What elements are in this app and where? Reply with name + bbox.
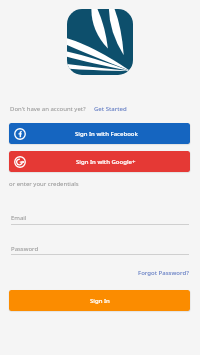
button[interactable]: Facebook xyxy=(9,123,190,144)
staticText: Don't have an account yet? xyxy=(10,105,86,113)
staticText: Email xyxy=(11,214,27,222)
staticText: Get Started xyxy=(94,105,127,113)
button[interactable]: Forgot Password? xyxy=(138,269,189,277)
staticText: Sign In with Facebook xyxy=(75,130,138,138)
staticText: Password xyxy=(11,245,39,253)
other: Facebook xyxy=(14,128,26,140)
staticText: Forgot Password? xyxy=(138,269,189,277)
staticText: Sign In with Google+ xyxy=(76,158,136,166)
other: Google Plus xyxy=(14,156,26,168)
button[interactable]: Sign In xyxy=(9,290,190,311)
button[interactable]: Get Started xyxy=(94,105,127,113)
staticText: or enter your credentials xyxy=(9,180,79,188)
staticText: Sign In xyxy=(90,297,110,305)
button[interactable]: Google Plus xyxy=(9,151,190,172)
